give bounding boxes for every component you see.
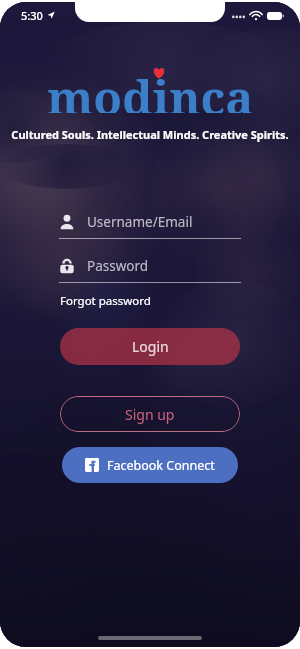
button[interactable]: Sign up [60,396,240,432]
button[interactable]: Username [59,210,241,239]
staticText: Username/Email [87,213,193,231]
button[interactable]: Forgot password [59,291,152,311]
staticText: Facebook Connect [107,457,215,474]
staticText: Sign up [125,405,175,424]
staticText: Password [87,257,149,275]
staticText: Forgot password [60,293,151,309]
button[interactable]: Facebook Connect [62,447,238,483]
other: Username [59,214,75,230]
button[interactable]: Password [59,254,241,283]
staticText: 5:30 [21,8,43,23]
button[interactable]: Login [60,328,240,365]
staticText: modinca [47,65,254,113]
staticText: Login [132,337,169,356]
other: Password [59,258,75,274]
staticText: Cultured Souls. Intellectual Minds. Crea… [0,127,300,142]
